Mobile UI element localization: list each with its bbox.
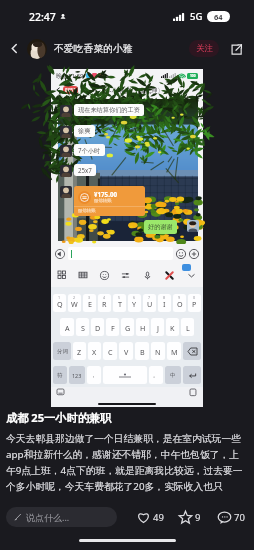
staticText: I xyxy=(163,299,166,309)
staticText: G xyxy=(125,323,131,333)
button[interactable]: A xyxy=(60,318,74,336)
button[interactable]: 中 xyxy=(165,366,181,384)
staticText: ¥175.00 xyxy=(94,190,117,198)
staticText: ··· xyxy=(193,85,199,95)
staticText: 7 xyxy=(148,295,151,300)
staticText: 晚上11:39 xyxy=(56,72,84,80)
button[interactable]: 9 xyxy=(173,294,186,312)
staticText: P xyxy=(192,299,197,309)
staticText: Z xyxy=(77,347,82,357)
button[interactable]: Share xyxy=(228,41,244,57)
staticText: 3 xyxy=(88,295,91,300)
button[interactable]: L xyxy=(181,318,194,336)
staticText: 1 xyxy=(58,295,61,300)
staticText: 中 xyxy=(170,372,176,379)
button[interactable]: 5 xyxy=(113,294,126,312)
staticText: B xyxy=(140,347,145,357)
staticText: 8 xyxy=(163,295,166,300)
button[interactable]: H xyxy=(136,318,149,336)
button[interactable]: Z xyxy=(73,342,86,360)
staticText: 22:47 xyxy=(29,10,56,24)
button[interactable]: 2 xyxy=(68,294,81,312)
staticText: 49 xyxy=(153,511,164,524)
staticText: 123 xyxy=(72,372,82,379)
staticText: M xyxy=(171,347,178,357)
button[interactable]: Favorite xyxy=(178,510,201,525)
staticText: 现在来结算你们的工资 xyxy=(78,106,140,114)
button[interactable]: Comment xyxy=(217,510,245,525)
staticText: 徐爽 xyxy=(78,127,91,135)
button[interactable]: V xyxy=(119,342,133,360)
button[interactable]: M xyxy=(167,342,181,360)
staticText: 好的谢谢 xyxy=(148,223,173,231)
button[interactable]: 4 xyxy=(98,294,111,312)
button[interactable]: B xyxy=(135,342,149,360)
staticText: 64 xyxy=(214,12,223,22)
button[interactable]: Like xyxy=(136,510,164,525)
staticText: L xyxy=(186,323,190,333)
button[interactable]: ， xyxy=(87,366,101,384)
staticText: 微信转账 xyxy=(78,208,96,214)
button[interactable]: Profile photo xyxy=(27,39,47,59)
staticText: D xyxy=(95,323,101,333)
staticText: 100 xyxy=(190,74,196,78)
staticText: 微信转账 xyxy=(94,198,112,204)
staticText: 0 xyxy=(193,295,196,300)
button[interactable]: Space xyxy=(103,366,147,384)
staticText: ··· xyxy=(105,72,110,79)
button[interactable]: 0 xyxy=(188,294,201,312)
staticText: 分词 xyxy=(57,348,68,355)
staticText: F xyxy=(111,323,115,333)
staticText: R xyxy=(102,299,107,309)
button[interactable]: 6 xyxy=(128,294,141,312)
staticText: 4 xyxy=(103,295,106,300)
button[interactable]: Back xyxy=(6,40,23,57)
staticText: 符 xyxy=(57,372,63,379)
staticText: U xyxy=(147,299,153,309)
staticText: 不爱吃香菜的小雅 xyxy=(54,43,133,55)
staticText: 6 xyxy=(133,295,136,300)
button[interactable]: 123 xyxy=(69,366,85,384)
button[interactable]: D xyxy=(91,318,104,336)
button[interactable]: 符 xyxy=(53,366,67,384)
staticText: 9 xyxy=(195,511,201,524)
button[interactable]: F xyxy=(106,318,119,336)
staticText: A xyxy=(65,323,70,333)
staticText: 8651 xyxy=(65,87,76,93)
staticText: ， xyxy=(91,372,97,379)
button[interactable]: 3 xyxy=(83,294,96,312)
staticText: K xyxy=(170,323,175,333)
staticText: W xyxy=(71,299,78,309)
button[interactable]: X xyxy=(88,342,101,360)
button[interactable]: 1 xyxy=(53,294,66,312)
staticText: 5 xyxy=(118,295,121,300)
staticText: Y xyxy=(132,299,137,309)
button[interactable]: K xyxy=(166,318,179,336)
staticText: 今天去郫县那边做了一个日结兼职，是在室内试玩一些app和拉新什么的，感谢还不错耶… xyxy=(6,433,248,493)
staticText: E xyxy=(88,299,92,309)
button[interactable]: 说点什么... xyxy=(6,507,117,527)
button[interactable]: 。 xyxy=(149,366,163,384)
staticText: 。 xyxy=(153,372,159,379)
staticText: O xyxy=(177,299,183,309)
button[interactable]: S xyxy=(76,318,89,336)
staticText: S xyxy=(81,323,85,333)
staticText: Q xyxy=(57,299,63,309)
staticText: C xyxy=(108,347,113,357)
button[interactable]: C xyxy=(103,342,117,360)
button[interactable]: G xyxy=(121,318,134,336)
staticText: 成都 25一小时的兼职 xyxy=(6,410,112,425)
button[interactable]: J xyxy=(151,318,164,336)
button[interactable]: 分词 xyxy=(53,342,71,360)
button[interactable]: 8 xyxy=(158,294,171,312)
staticText: J xyxy=(157,323,159,333)
button[interactable]: 关注 xyxy=(189,40,219,57)
button[interactable]: Backspace xyxy=(183,342,201,360)
button[interactable]: 7 xyxy=(143,294,156,312)
staticText: 9 xyxy=(178,295,181,300)
button[interactable]: Enter xyxy=(183,366,201,384)
staticText: 70 xyxy=(234,511,245,524)
button[interactable]: N xyxy=(151,342,165,360)
staticText: X xyxy=(92,347,97,357)
staticText: H xyxy=(140,323,146,333)
